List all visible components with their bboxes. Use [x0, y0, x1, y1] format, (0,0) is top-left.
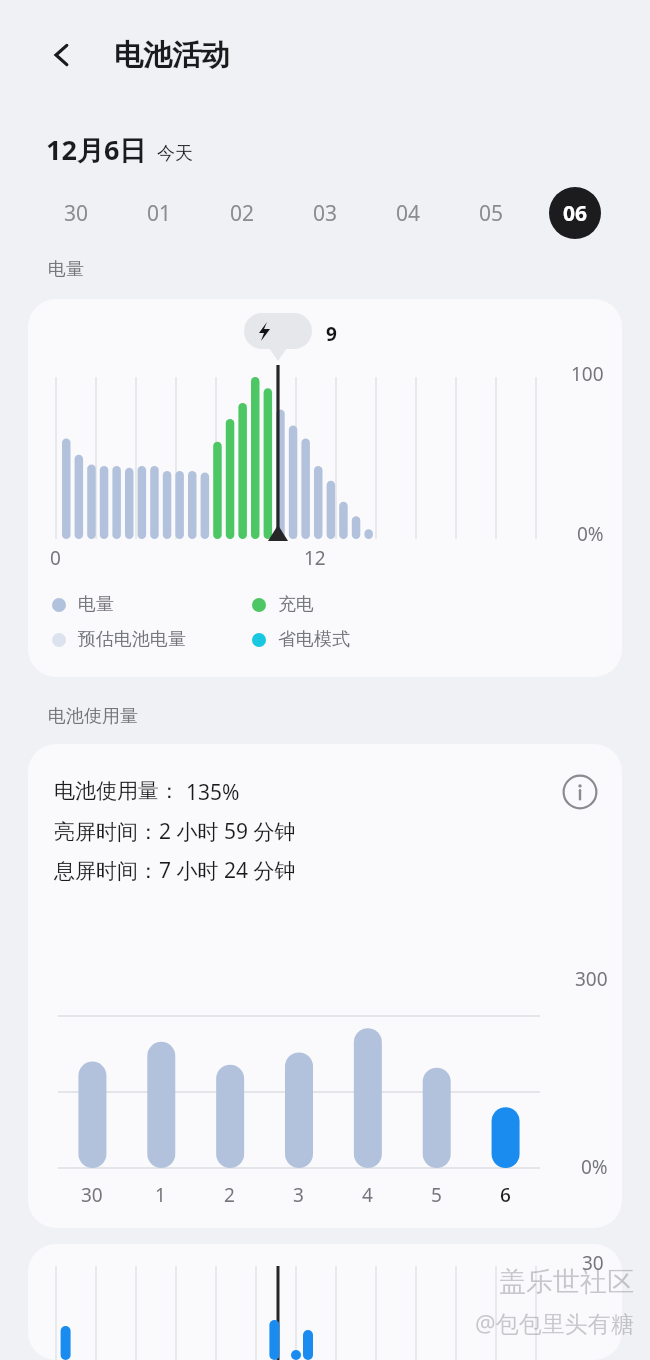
button[interactable]: 04 — [367, 182, 450, 244]
staticText: 03 — [313, 199, 338, 228]
button[interactable]: Info — [558, 770, 602, 814]
staticText: 电量 — [78, 593, 114, 616]
staticText: 01 — [147, 199, 172, 228]
staticText: 02 — [230, 199, 255, 228]
button[interactable]: 100 — [28, 299, 622, 677]
staticText: 2 — [224, 1182, 235, 1208]
button[interactable]: 05 — [450, 182, 533, 244]
button[interactable]: 03 — [284, 182, 367, 244]
staticText: 30 — [582, 1250, 604, 1276]
staticText: 04 — [396, 199, 421, 228]
staticText: 100 — [571, 361, 604, 387]
staticText: 息屏时间：7 小时 24 分钟 — [54, 856, 296, 885]
staticText: 135% — [186, 778, 240, 807]
staticText: 30 — [64, 199, 89, 228]
staticText: 5 — [431, 1182, 442, 1208]
staticText: 4 — [362, 1182, 373, 1208]
staticText: 电池使用量： — [54, 778, 180, 804]
staticText: 9 — [326, 321, 337, 347]
staticText: 12 — [304, 545, 326, 571]
staticText: 电池活动 — [114, 37, 230, 74]
staticText: 6 — [500, 1182, 511, 1208]
staticText: @包包里头有糖 — [475, 1307, 634, 1338]
staticText: 充电 — [278, 593, 314, 616]
staticText: 预估电池电量 — [78, 628, 186, 651]
button[interactable]: Back — [36, 29, 88, 81]
staticText: 省电模式 — [278, 628, 350, 651]
button[interactable]: 06 — [533, 182, 616, 244]
staticText: 电量 — [48, 258, 84, 281]
staticText: 300 — [575, 966, 608, 992]
button[interactable]: 电池使用量： — [28, 744, 622, 1228]
staticText: 0 — [50, 545, 61, 571]
staticText: 亮屏时间：2 小时 59 分钟 — [54, 817, 296, 846]
button[interactable]: 01 — [118, 182, 201, 244]
button[interactable]: 30 — [34, 182, 118, 244]
staticText: 0% — [581, 1154, 608, 1180]
staticText: 05 — [479, 199, 504, 228]
button[interactable]: 30 — [28, 1244, 622, 1360]
staticText: 电池使用量 — [48, 705, 138, 728]
staticText: 06 — [563, 199, 588, 228]
staticText: 0% — [577, 521, 604, 547]
staticText: 盖乐世社区 — [499, 1265, 634, 1299]
button[interactable]: 02 — [201, 182, 284, 244]
staticText: 30 — [81, 1182, 103, 1208]
staticText: 3 — [293, 1182, 304, 1208]
staticText: 12月6日 — [46, 131, 147, 168]
staticText: 今天 — [157, 142, 193, 165]
staticText: 1 — [155, 1182, 166, 1208]
